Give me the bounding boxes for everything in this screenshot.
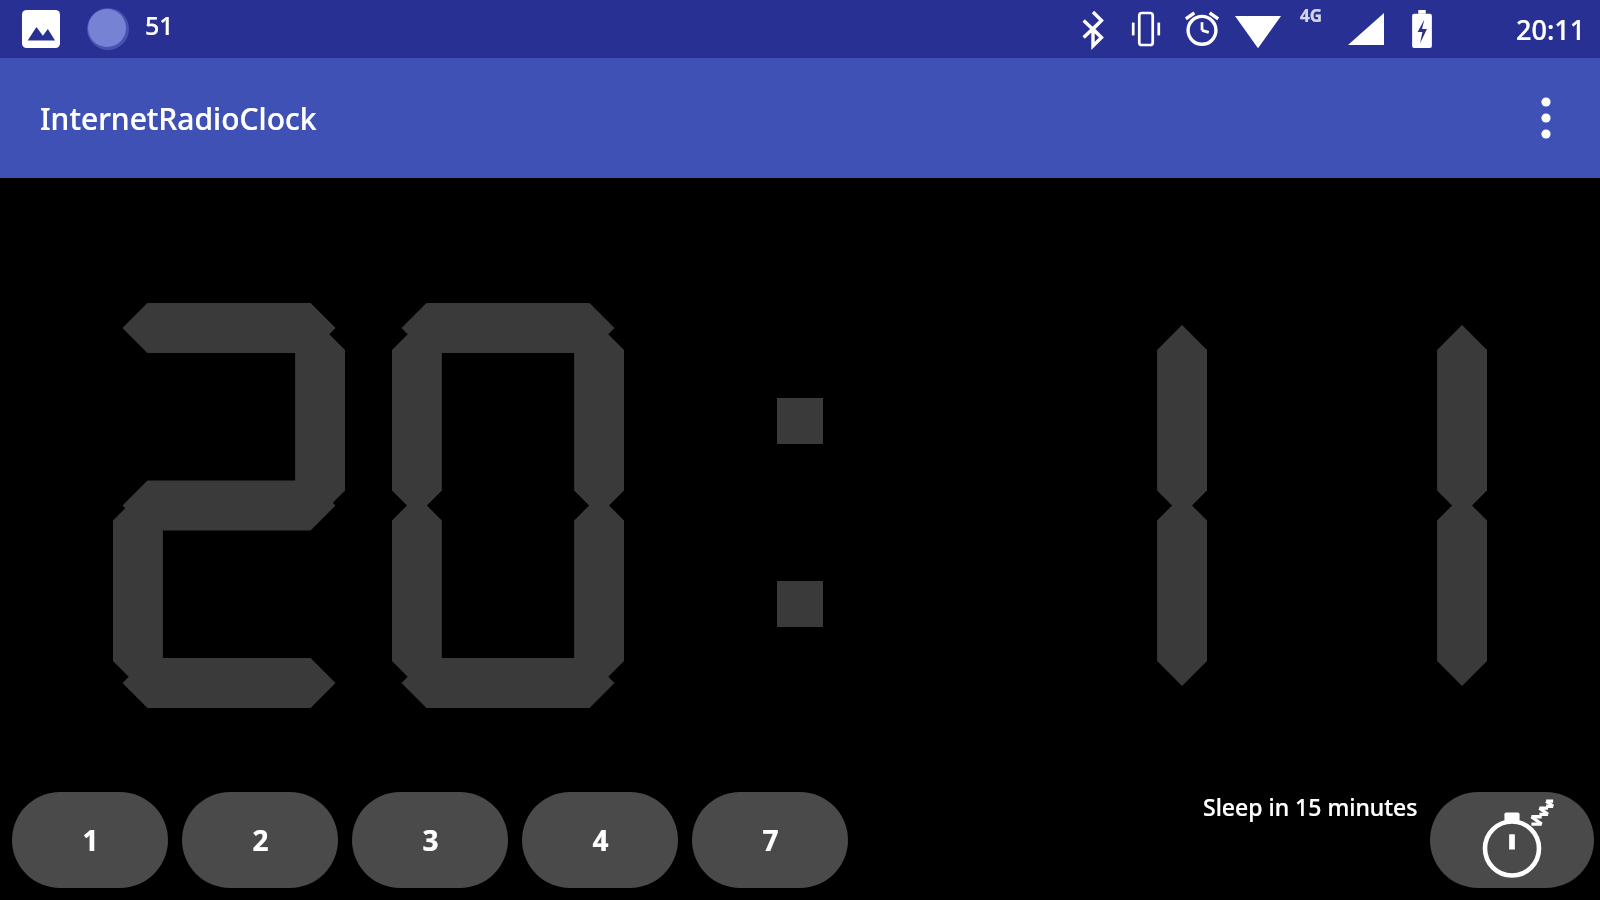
button[interactable]: 7 (692, 792, 848, 888)
staticText: 3 (422, 821, 439, 859)
staticText: 2 (252, 821, 269, 859)
button[interactable]: Sleep timer (1430, 792, 1594, 888)
button[interactable]: 2 (182, 792, 338, 888)
button[interactable]: More options (1510, 82, 1582, 154)
staticText: 51 (145, 8, 174, 42)
staticText: 4G (1300, 4, 1323, 27)
staticText: 7 (762, 821, 779, 859)
staticText: 1 (82, 821, 99, 859)
staticText: InternetRadioClock (40, 98, 317, 139)
staticText: Sleep in 15 minutes (1203, 791, 1418, 822)
button[interactable]: 1 (12, 792, 168, 888)
staticText: 20:11 (1516, 11, 1586, 48)
button[interactable]: 3 (352, 792, 508, 888)
button[interactable]: 4 (522, 792, 678, 888)
staticText: 4 (592, 821, 609, 859)
